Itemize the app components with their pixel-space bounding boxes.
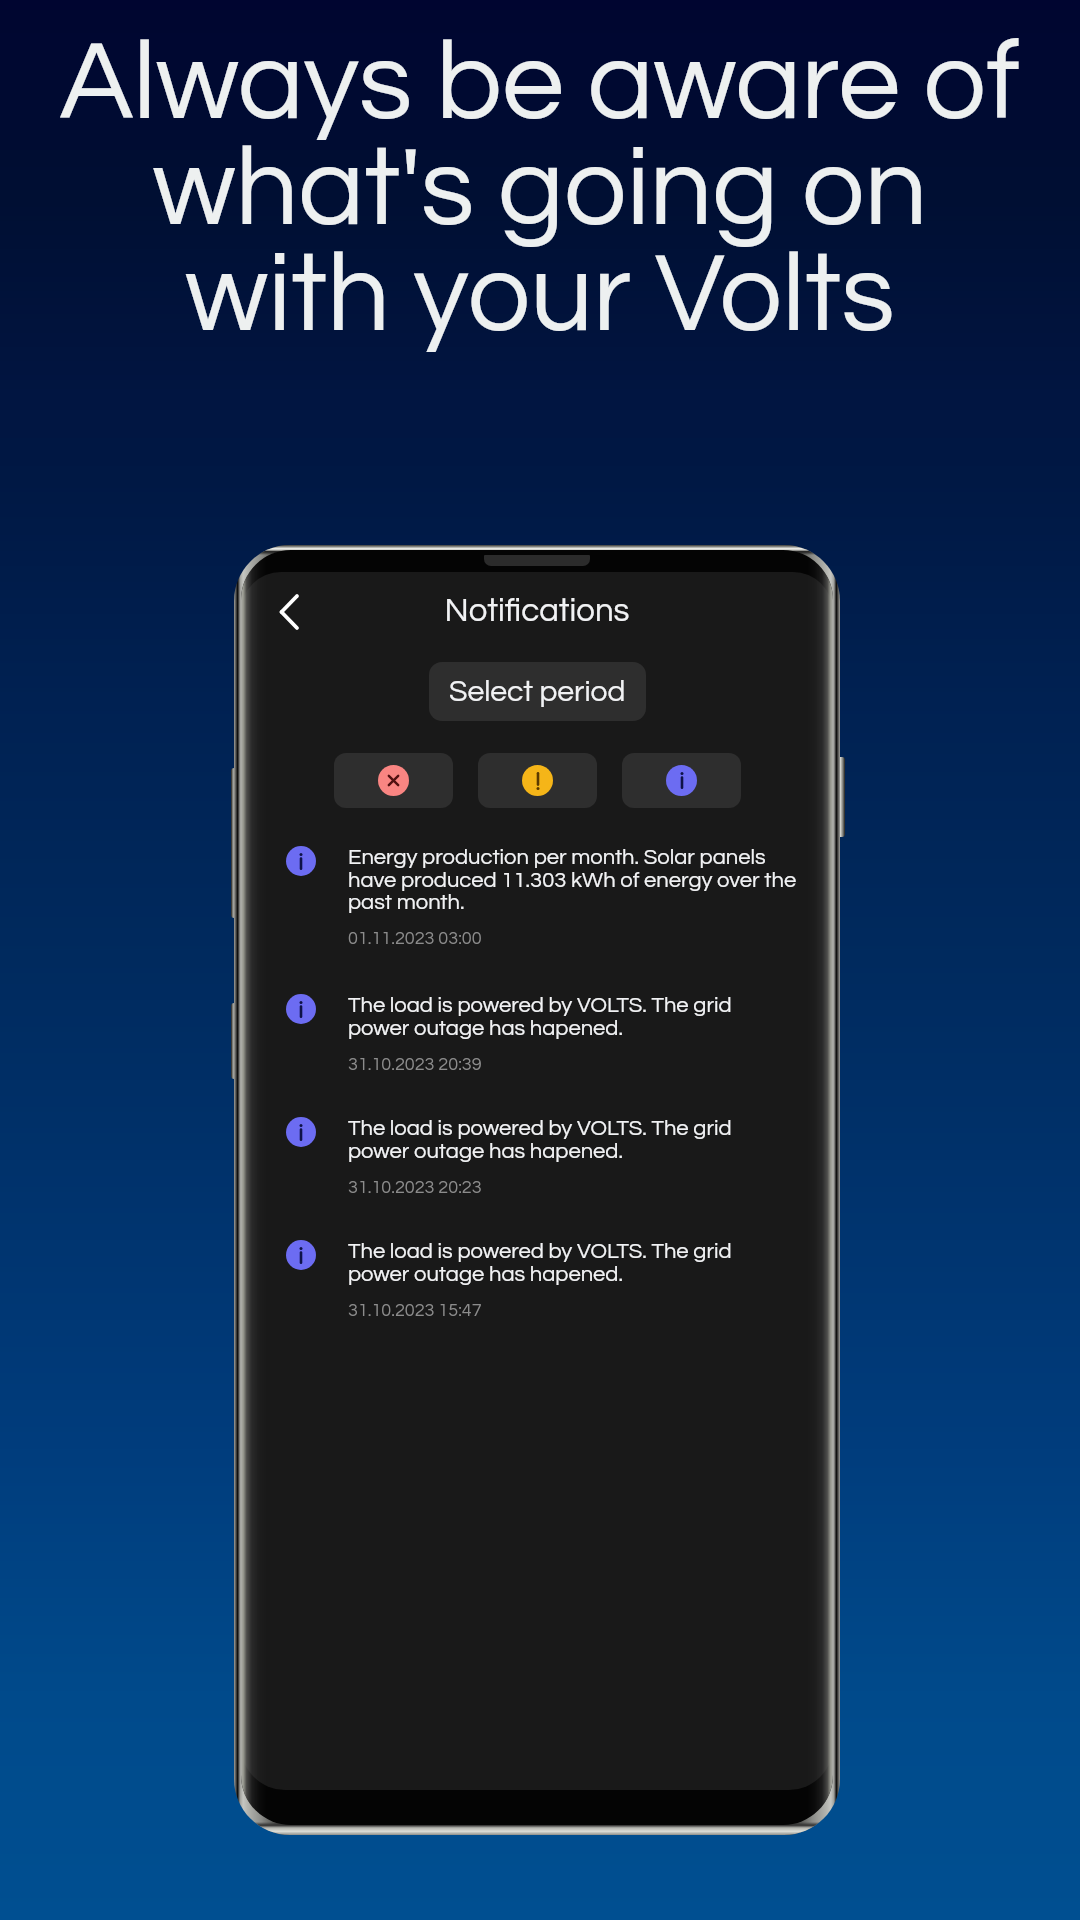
button[interactable]: Energy production per month. Solar panel… [241,840,833,988]
staticText: The load is powered by VOLTS. The grid p… [348,1117,732,1162]
staticText: 31.10.2023 20:39 [348,1055,482,1074]
staticText: The load is powered by VOLTS. The grid p… [348,1240,732,1285]
button[interactable]: Errors filter [334,753,453,808]
button[interactable]: Info filter [622,753,741,808]
staticText: Notifications [241,594,833,628]
staticText: 01.11.2023 03:00 [348,929,482,948]
staticText: The load is powered by VOLTS. The grid p… [348,994,732,1039]
staticText: Always be aware of what's going on with … [0,27,1080,354]
button[interactable]: The load is powered by VOLTS. The grid p… [241,1111,833,1234]
button[interactable]: Warnings filter [478,753,597,808]
staticText: 31.10.2023 15:47 [348,1301,482,1320]
staticText: Select period [449,676,626,707]
button[interactable]: Select period [429,662,646,721]
button[interactable]: The load is powered by VOLTS. The grid p… [241,1234,833,1357]
button[interactable]: The load is powered by VOLTS. The grid p… [241,988,833,1111]
button[interactable]: Back [261,585,315,639]
staticText: 31.10.2023 20:23 [348,1178,482,1197]
staticText: Energy production per month. Solar panel… [348,846,797,913]
